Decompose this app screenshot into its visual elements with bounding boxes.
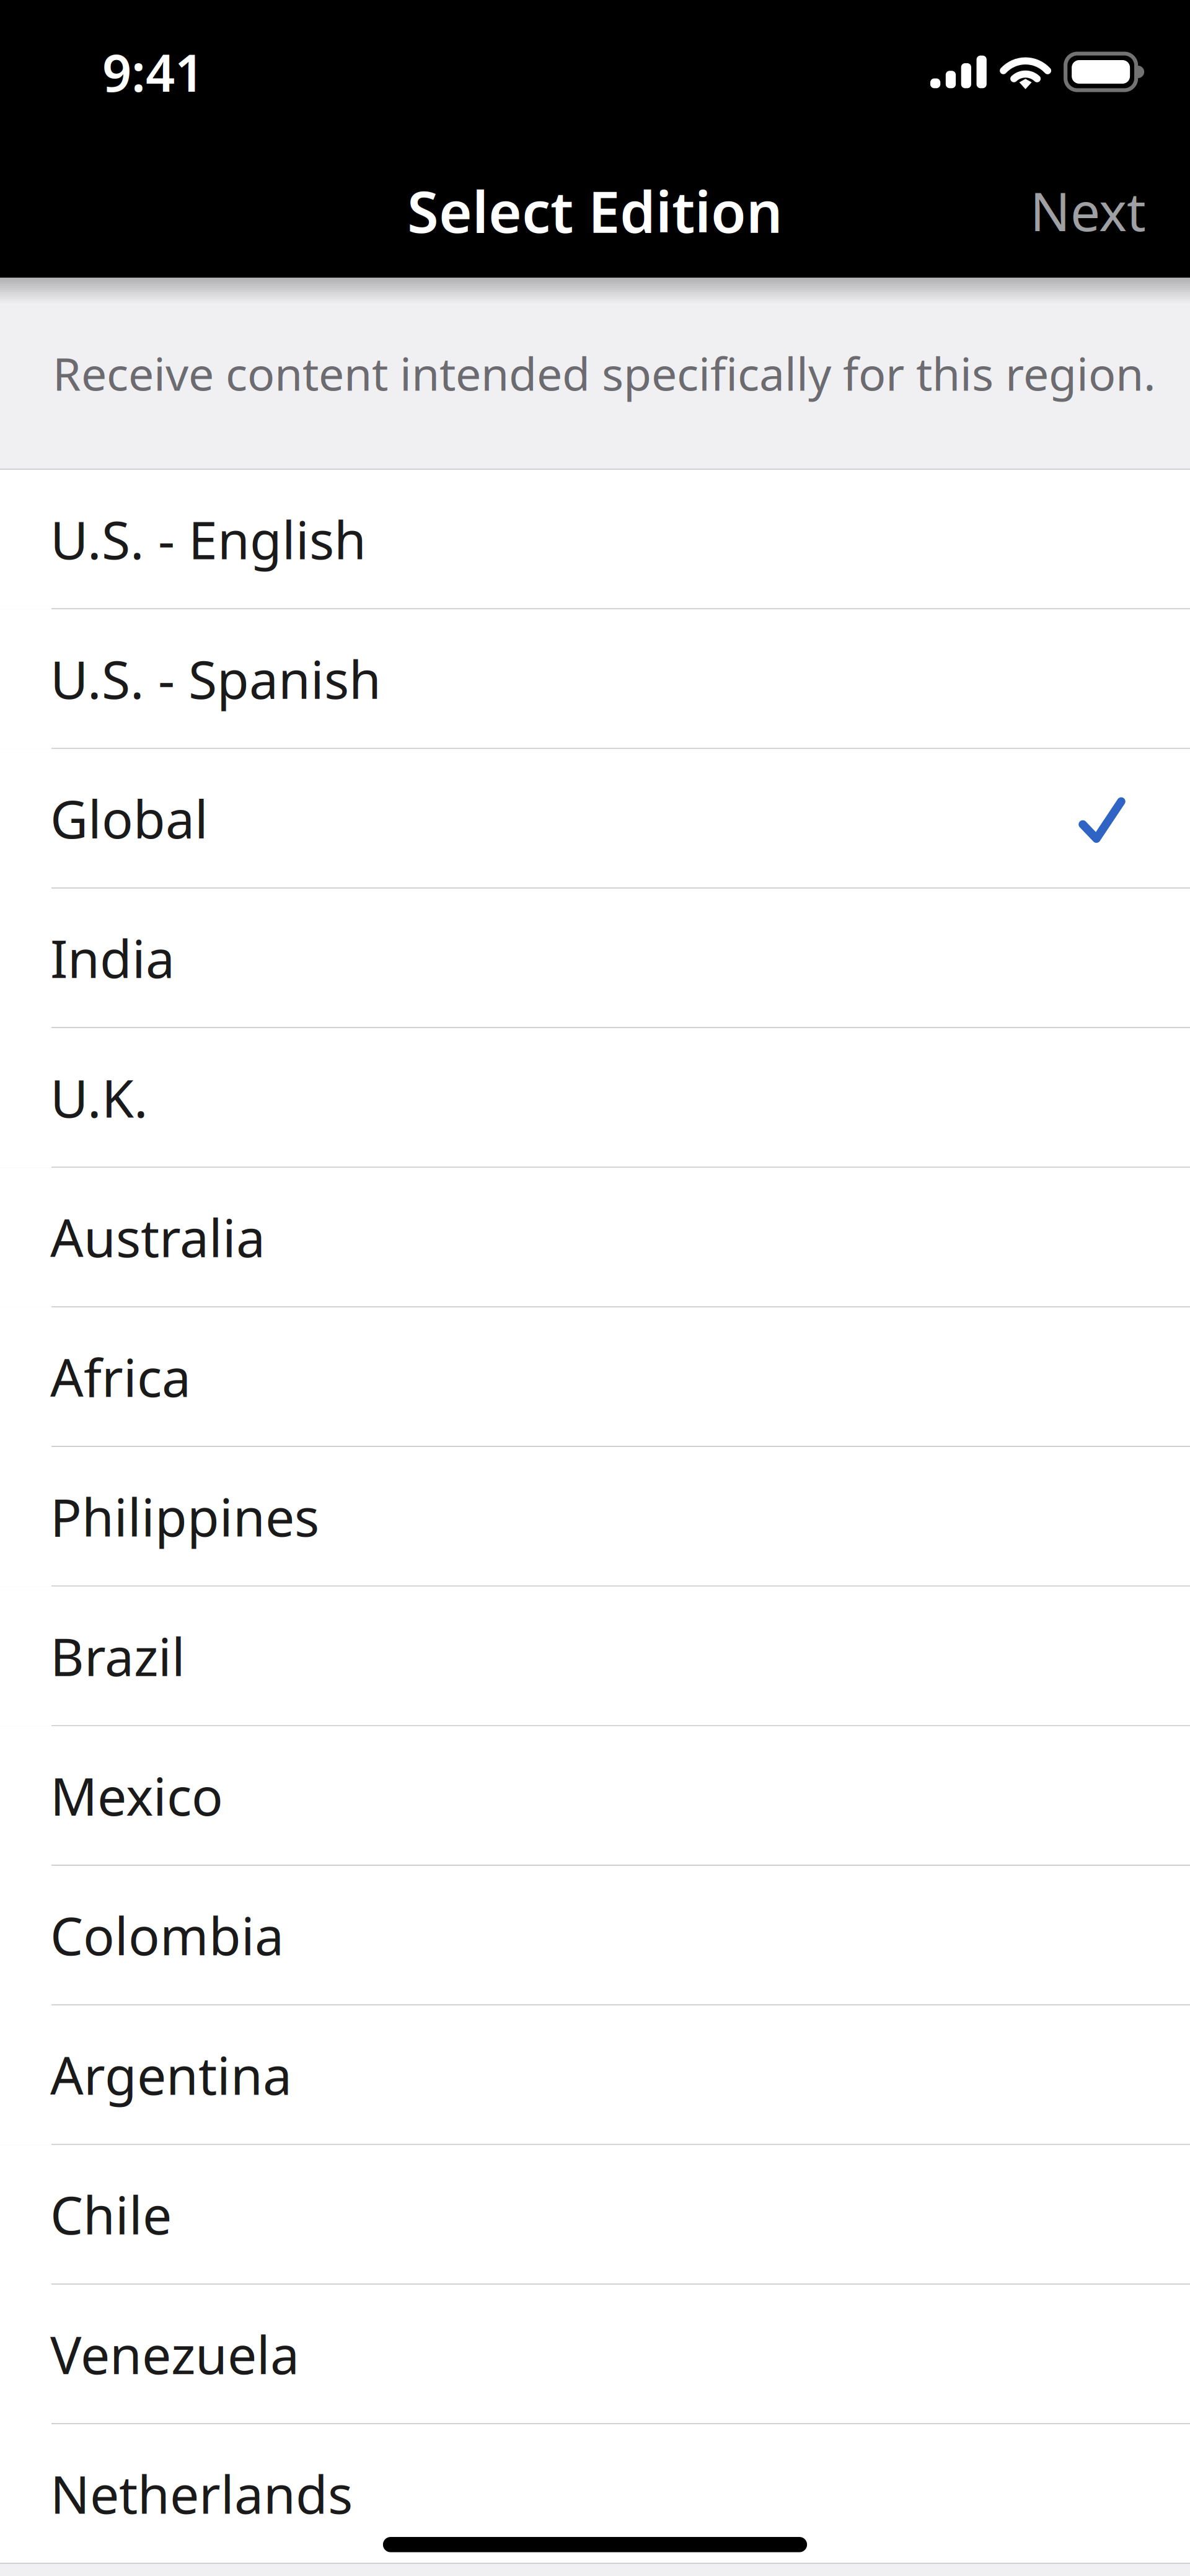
staticText: Global: [50, 784, 208, 853]
staticText: U.S. - English: [50, 504, 366, 574]
button[interactable]: Philippines: [0, 1447, 1190, 1587]
staticText: Chile: [50, 2180, 172, 2249]
staticText: Philippines: [50, 1482, 319, 1551]
button[interactable]: Colombia: [0, 1866, 1190, 2005]
button[interactable]: U.S. - Spanish: [0, 609, 1190, 749]
staticText: U.K.: [50, 1063, 148, 1132]
staticText: Next: [1030, 176, 1146, 246]
button[interactable]: U.S. - English: [0, 470, 1190, 609]
button[interactable]: Argentina: [0, 2005, 1190, 2145]
button[interactable]: Netherlands: [0, 2424, 1190, 2564]
button[interactable]: Chile: [0, 2145, 1190, 2285]
staticText: Mexico: [50, 1761, 223, 1830]
staticText: Australia: [50, 1202, 265, 1272]
staticText: Colombia: [50, 1900, 284, 1970]
button[interactable]: Australia: [0, 1168, 1190, 1307]
button[interactable]: Next: [1009, 154, 1167, 267]
button[interactable]: Mexico: [0, 1726, 1190, 1866]
button[interactable]: Brazil: [0, 1587, 1190, 1726]
staticText: Select Edition: [407, 173, 783, 249]
staticText: Argentina: [50, 2040, 292, 2109]
staticText: Receive content intended specifically fo…: [53, 343, 1156, 403]
staticText: 9:41: [102, 38, 204, 106]
staticText: Africa: [50, 1342, 191, 1411]
button[interactable]: Global: [0, 749, 1190, 889]
staticText: India: [50, 923, 175, 992]
staticText: Netherlands: [50, 2459, 353, 2528]
staticText: Brazil: [50, 1621, 185, 1690]
button[interactable]: Africa: [0, 1307, 1190, 1447]
button[interactable]: India: [0, 889, 1190, 1028]
button[interactable]: Venezuela: [0, 2285, 1190, 2424]
staticText: Venezuela: [50, 2319, 299, 2388]
button[interactable]: U.K.: [0, 1028, 1190, 1168]
staticText: U.S. - Spanish: [50, 644, 381, 713]
